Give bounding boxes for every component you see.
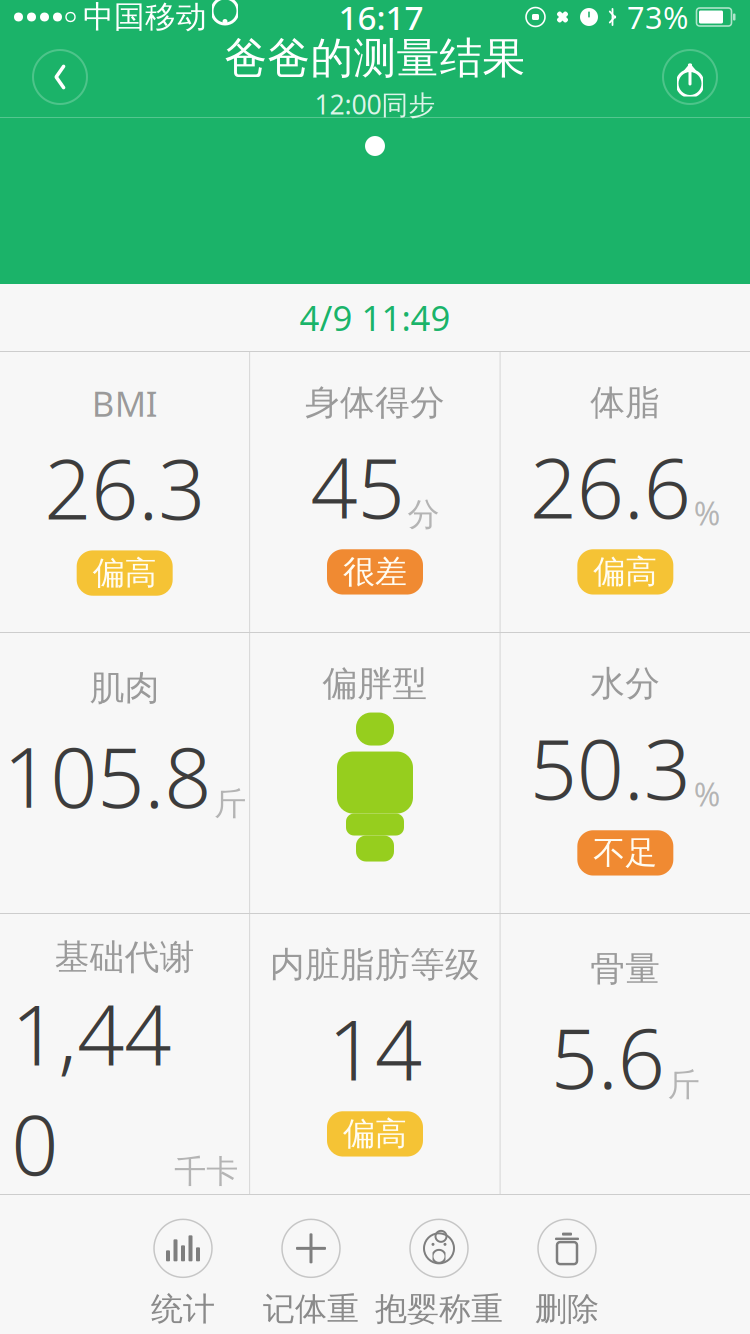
- staticText: 偏高: [93, 553, 157, 593]
- button[interactable]: 骨量: [501, 914, 750, 1194]
- staticText: 肌肉: [90, 666, 160, 709]
- staticText: 26.6: [530, 431, 691, 541]
- staticText: BMI: [92, 380, 158, 426]
- staticText: 分: [407, 495, 439, 534]
- button[interactable]: 分享: [663, 50, 717, 104]
- staticText: 记体重: [263, 1289, 359, 1329]
- staticText: 很差: [343, 552, 407, 591]
- staticText: 偏高: [593, 552, 657, 591]
- staticText: 抱婴称重: [375, 1289, 503, 1329]
- staticText: 16:17: [338, 0, 423, 39]
- button[interactable]: 记体重: [247, 1219, 375, 1329]
- staticText: 1,440: [11, 979, 171, 1198]
- staticText: 内脏脂肪等级: [270, 943, 480, 986]
- staticText: 105.8: [3, 721, 211, 830]
- staticText: 12:00同步: [314, 86, 435, 122]
- staticText: 26.3: [44, 433, 205, 542]
- button[interactable]: 体脂: [501, 352, 750, 632]
- staticText: 身体得分: [305, 381, 445, 424]
- staticText: 水分: [590, 662, 660, 705]
- staticText: 体脂: [590, 381, 660, 424]
- staticText: 千卡: [174, 1152, 238, 1191]
- staticText: 14: [328, 993, 422, 1103]
- staticText: 4/9 11:49: [299, 294, 450, 340]
- button[interactable]: 肌肉: [0, 633, 249, 913]
- button[interactable]: 内脏脂肪等级: [250, 914, 500, 1194]
- staticText: 73%: [627, 0, 688, 37]
- staticText: 斤: [214, 784, 246, 823]
- staticText: %: [694, 773, 721, 815]
- button[interactable]: 基础代谢: [0, 914, 249, 1194]
- button[interactable]: 抱婴称重: [375, 1219, 503, 1329]
- staticText: 爸爸的测量结果: [224, 32, 525, 84]
- staticText: %: [694, 492, 721, 534]
- button[interactable]: 偏胖型: [250, 633, 500, 913]
- staticText: 斤: [668, 1065, 700, 1104]
- staticText: 偏高: [343, 1114, 407, 1153]
- button[interactable]: 统计: [119, 1219, 247, 1329]
- staticText: 统计: [151, 1289, 215, 1329]
- staticText: 基础代谢: [55, 936, 195, 979]
- staticText: 偏胖型: [322, 662, 427, 705]
- staticText: 不足: [593, 833, 657, 872]
- staticText: 5.6: [551, 1002, 665, 1111]
- button[interactable]: 删除: [503, 1219, 631, 1329]
- button[interactable]: 身体得分: [250, 352, 500, 632]
- staticText: 45: [310, 431, 404, 541]
- button[interactable]: 水分: [501, 633, 750, 913]
- staticText: 删除: [535, 1289, 599, 1329]
- staticText: 骨量: [590, 947, 660, 990]
- staticText: 中国移动: [83, 0, 207, 36]
- staticText: 50.3: [530, 712, 691, 822]
- button[interactable]: BMI: [0, 352, 249, 632]
- staticText: 未达标: [77, 1209, 173, 1248]
- button[interactable]: 返回: [33, 50, 87, 104]
